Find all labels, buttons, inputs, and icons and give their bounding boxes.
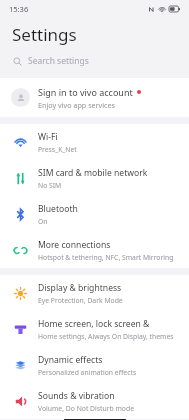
staticText: Dynamic effects xyxy=(38,354,103,366)
button[interactable]: Home screen, lock screen & wallpaper xyxy=(0,311,189,347)
staticText: Personalized animation effects xyxy=(38,368,137,377)
staticText: Bluetooth xyxy=(38,203,78,215)
staticText: Wi-Fi xyxy=(38,131,58,143)
staticText: Volume, Do Not Disturb mode xyxy=(38,404,134,413)
button[interactable]: Sounds & vibration xyxy=(0,383,189,419)
staticText: Settings xyxy=(12,23,77,46)
button[interactable]: SIM card & mobile network xyxy=(0,160,189,196)
staticText: Sounds & vibration xyxy=(38,390,115,402)
staticText: Home settings, Always On Display, themes xyxy=(38,332,174,341)
staticText: Search settings xyxy=(28,55,89,67)
staticText: 15:36 xyxy=(9,4,29,14)
staticText: Home screen, lock screen & wallpaper xyxy=(38,318,179,330)
button[interactable]: More connections xyxy=(0,232,189,268)
staticText: More connections xyxy=(38,239,111,251)
staticText: Sign in to vivo account xyxy=(38,86,133,98)
staticText: Press_K_Net xyxy=(38,145,77,154)
staticText: Enjoy vivo app services xyxy=(38,100,116,110)
button[interactable]: Dynamic effects xyxy=(0,347,189,383)
button[interactable]: Wi-Fi xyxy=(0,124,189,160)
button[interactable]: Search settings xyxy=(0,50,189,72)
button[interactable]: Display & brightness xyxy=(0,275,189,311)
staticText: Display & brightness xyxy=(38,282,122,294)
staticText: No SIM xyxy=(38,181,62,190)
button[interactable]: Bluetooth xyxy=(0,196,189,232)
button[interactable]: Sign in to vivo account xyxy=(0,78,189,117)
staticText: Eye Protection, Dark Mode xyxy=(38,296,123,305)
staticText: Hotspot & tethering, NFC, Smart Mirrorin… xyxy=(38,253,174,262)
staticText: On xyxy=(38,217,48,226)
staticText: SIM card & mobile network xyxy=(38,167,148,179)
